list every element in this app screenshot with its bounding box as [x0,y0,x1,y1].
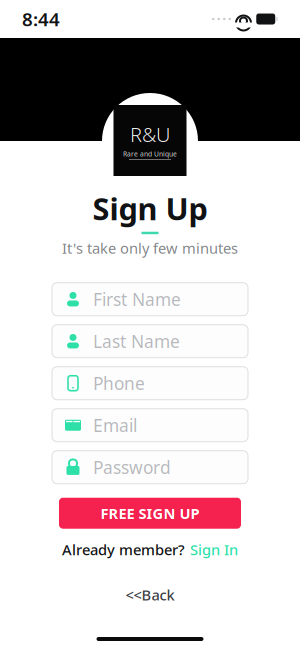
button[interactable]: Last Name [52,325,248,358]
button[interactable]: Password [52,451,248,484]
staticText: R&U [130,121,170,148]
button[interactable]: FREE SIGN UP [59,498,241,529]
staticText: Sign Up [92,188,207,229]
button[interactable]: First Name [52,283,248,316]
staticText: FREE SIGN UP [100,503,199,523]
staticText: Rare and Unique [123,150,177,158]
staticText: <<Back [125,585,174,605]
staticText: Last Name [93,330,180,353]
staticText: First Name [93,288,181,311]
button[interactable]: <<Back [115,581,184,609]
button[interactable]: Email [52,409,248,442]
staticText: Phone [93,372,145,395]
staticText: It's take only few minutes [62,238,238,258]
staticText: 8:44 [22,7,60,31]
button[interactable]: Sign In [190,540,238,559]
staticText: Sign In [190,540,238,559]
staticText: Password [93,456,171,479]
button[interactable]: Phone [52,367,248,400]
staticText: Already member? [62,540,185,559]
staticText: Email [93,414,137,437]
